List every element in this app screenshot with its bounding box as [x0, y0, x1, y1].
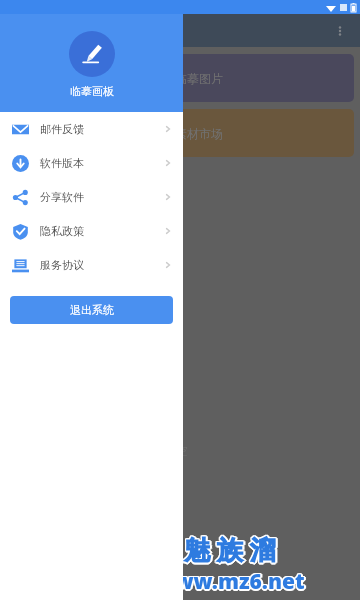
- staticText: 分享软件: [40, 190, 84, 204]
- staticText: www.mz6.net: [156, 568, 306, 597]
- staticText: 魅 族 溜: [184, 533, 276, 569]
- button[interactable]: 退出系统: [10, 296, 173, 324]
- staticText: 临摹画板: [70, 84, 114, 98]
- staticText: 邮件反馈: [40, 122, 84, 136]
- staticText: www.mz6.net: [154, 568, 304, 597]
- staticText: www.mz6.net: [155, 569, 305, 598]
- staticText: 历史为空: [140, 443, 188, 458]
- staticText: 软件版本: [40, 156, 84, 170]
- staticText: 魅 族 溜: [184, 531, 276, 567]
- staticText: 魅 族 溜: [183, 530, 275, 566]
- button[interactable]: 分享软件: [0, 180, 183, 214]
- staticText: 魅 族 溜: [185, 532, 277, 568]
- button[interactable]: 隐私政策: [0, 214, 183, 248]
- staticText: www.mz6.net: [154, 566, 304, 595]
- staticText: www.mz6.net: [156, 566, 306, 595]
- staticText: 服务协议: [40, 258, 84, 272]
- staticText: 临摹图片: [175, 71, 223, 86]
- button[interactable]: 素材市场: [6, 109, 354, 157]
- staticText: 魅 族 溜: [183, 531, 275, 567]
- staticText: 魅 族 溜: [183, 532, 275, 568]
- staticText: www.mz6.net: [157, 567, 307, 596]
- staticText: www.mz6.net: [154, 567, 304, 596]
- staticText: www.mz6.net: [155, 567, 305, 596]
- staticText: 魅 族 溜: [184, 530, 276, 566]
- button[interactable]: 邮件反馈: [0, 112, 183, 146]
- button[interactable]: 服务协议: [0, 248, 183, 282]
- staticText: 魅 族 溜: [185, 530, 277, 566]
- button[interactable]: More options: [328, 19, 352, 43]
- staticText: 隐私政策: [40, 224, 84, 238]
- button[interactable]: 临摹图片: [6, 54, 354, 102]
- button[interactable]: 软件版本: [0, 146, 183, 180]
- staticText: www.mz6.net: [155, 566, 305, 595]
- staticText: 魅 族 溜: [186, 531, 278, 567]
- staticText: 退出系统: [70, 303, 114, 317]
- staticText: 素材市场: [175, 126, 223, 141]
